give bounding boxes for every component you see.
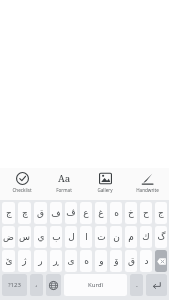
button[interactable]: ج	[2, 202, 15, 224]
staticText: Gallery	[97, 187, 113, 193]
staticText: ۆ	[114, 256, 119, 266]
staticText: ع	[83, 208, 89, 218]
staticText: ق	[128, 256, 135, 266]
button[interactable]: Handwrite	[127, 168, 167, 200]
staticText: Checklist	[12, 187, 32, 193]
button[interactable]: ?123	[2, 274, 27, 296]
button[interactable]: ژ	[18, 250, 31, 272]
button[interactable]: خ	[125, 202, 137, 224]
staticText: چ	[22, 208, 28, 218]
staticText: ،	[35, 281, 38, 289]
staticText: و	[99, 256, 104, 266]
staticText: س	[19, 232, 30, 242]
staticText: ڤ	[66, 208, 76, 218]
staticText: م	[128, 232, 134, 242]
button[interactable]: ض	[2, 226, 15, 248]
staticText: ل	[68, 232, 75, 242]
staticText: Handwrite	[136, 187, 159, 193]
button[interactable]: ج	[155, 202, 167, 224]
staticText: ب	[52, 232, 61, 242]
button[interactable]: Aa	[44, 168, 84, 200]
staticText: ڕ	[53, 256, 59, 266]
button[interactable]: ێ	[2, 250, 15, 272]
staticText: Kurdî	[88, 281, 104, 289]
staticText: ژ	[22, 256, 27, 266]
button[interactable]: ی	[65, 250, 77, 272]
button[interactable]: ڤ	[65, 202, 77, 224]
button[interactable]: و	[95, 250, 107, 272]
button[interactable]: ح	[140, 202, 152, 224]
button[interactable]: ق	[125, 250, 137, 272]
staticText: ر	[38, 256, 43, 266]
staticText: ح	[143, 208, 149, 218]
button[interactable]: Gallery	[85, 168, 125, 200]
button[interactable]: ل	[65, 226, 77, 248]
button[interactable]: ب	[50, 226, 62, 248]
button[interactable]: ۆ	[110, 250, 122, 272]
staticText: ?123	[8, 281, 21, 289]
button[interactable]: ە	[80, 250, 92, 272]
staticText: ە	[84, 256, 89, 266]
staticText: غ	[98, 208, 104, 218]
staticText: ج	[6, 208, 12, 218]
button[interactable]: غ	[95, 202, 107, 224]
button[interactable]: م	[125, 226, 137, 248]
button[interactable]: Enter	[146, 274, 167, 296]
staticText: ی	[67, 256, 75, 266]
button[interactable]: چ	[18, 202, 31, 224]
button[interactable]: ع	[80, 202, 92, 224]
button[interactable]: ا	[80, 226, 92, 248]
staticText: ن	[113, 232, 120, 242]
staticText: ج	[158, 208, 164, 218]
button[interactable]: Change keyboard language	[46, 274, 61, 296]
staticText: Format	[56, 187, 72, 193]
button[interactable]: ك	[140, 226, 152, 248]
staticText: ض	[3, 232, 14, 242]
staticText: گ	[157, 232, 166, 242]
staticText: ێ	[5, 256, 13, 266]
button[interactable]: د	[140, 250, 152, 272]
button[interactable]: Backspace	[155, 250, 167, 272]
staticText: Aa	[58, 172, 71, 185]
button[interactable]: گ	[155, 226, 167, 248]
staticText: ي	[37, 232, 45, 242]
staticText: د	[144, 256, 149, 266]
button[interactable]: ر	[34, 250, 47, 272]
staticText: ه	[114, 208, 119, 218]
staticText: ك	[142, 232, 150, 242]
staticText: ق	[37, 208, 44, 218]
staticText: خ	[128, 208, 134, 218]
button[interactable]: ت	[95, 226, 107, 248]
button[interactable]: س	[18, 226, 31, 248]
button[interactable]: Checklist	[2, 168, 42, 200]
button[interactable]: ق	[34, 202, 47, 224]
button[interactable]: ڕ	[50, 250, 62, 272]
button[interactable]: ه	[110, 202, 122, 224]
staticText: ف	[51, 208, 61, 218]
staticText: .	[136, 280, 138, 290]
button[interactable]: ي	[34, 226, 47, 248]
button[interactable]: .	[130, 274, 143, 296]
button[interactable]: Kurdî	[64, 274, 127, 296]
button[interactable]: ف	[50, 202, 62, 224]
button[interactable]: ن	[110, 226, 122, 248]
staticText: ا	[85, 232, 88, 242]
staticText: ت	[97, 232, 106, 242]
button[interactable]: ،	[30, 274, 43, 296]
